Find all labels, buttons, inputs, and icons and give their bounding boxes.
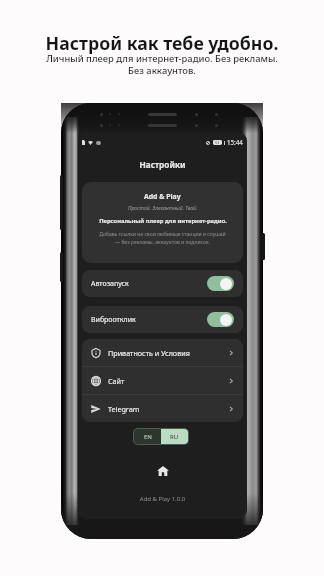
staticText: RU: [170, 433, 179, 441]
staticText: Telegram: [108, 404, 140, 414]
staticText: Автозапуск: [91, 279, 129, 289]
staticText: Add & Play: [144, 192, 181, 201]
staticText: Сайт: [108, 376, 125, 386]
staticText: Простой. Элегантный. Твой.: [128, 205, 198, 212]
staticText: Виброотклик: [91, 315, 136, 325]
staticText: Приватность и Условия: [108, 348, 190, 358]
staticText: 53: [215, 140, 220, 145]
staticText: Добавь ссылки на свои любимые станции и …: [99, 231, 226, 245]
button[interactable]: Виброотклик: [82, 306, 243, 333]
staticText: Персональный плеер для интернет-радио.: [99, 217, 227, 225]
button[interactable]: Сайт: [82, 367, 243, 394]
button[interactable]: RU: [161, 429, 188, 444]
button[interactable]: Приватность и Условия: [82, 339, 243, 366]
staticText: EN: [144, 433, 152, 441]
staticText: Add & Play 1.0.0: [78, 495, 247, 503]
button[interactable]: Home: [153, 461, 173, 481]
staticText: Личный плеер для интернет-радио. Без рек…: [0, 52, 324, 77]
button[interactable]: Telegram: [82, 395, 243, 422]
button[interactable]: EN: [134, 429, 161, 444]
staticText: Настройки: [78, 159, 247, 170]
staticText: Настрой как тебе удобно.: [0, 31, 324, 55]
button[interactable]: Автозапуск: [82, 270, 243, 297]
staticText: 15:44: [227, 138, 243, 146]
